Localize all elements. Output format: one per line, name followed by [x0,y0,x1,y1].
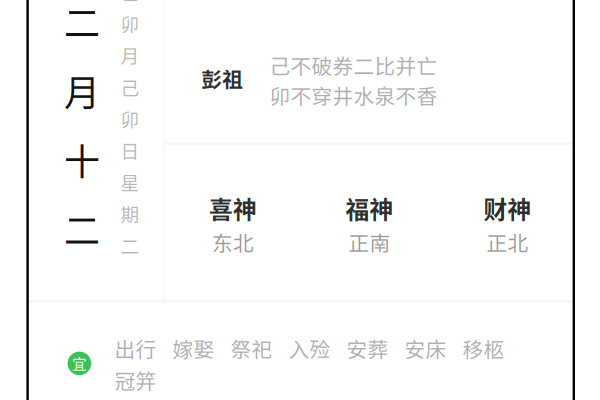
button[interactable]: 财神 [447,193,567,255]
staticText: 己 [120,73,139,100]
button[interactable]: 二 [49,0,115,263]
staticText: 日 [120,137,139,164]
staticText: 卯 [120,105,139,132]
staticText: 正南 [349,227,391,257]
staticText: 己 [120,0,139,5]
staticText: 月 [64,64,100,116]
staticText: 月 [120,41,139,68]
staticText: 冠笄 [114,365,156,395]
staticText: 二 [120,232,139,259]
staticText: 福神 [346,191,394,225]
button[interactable]: 喜神 [173,193,293,255]
staticText: 东北 [212,227,254,257]
staticText: 卯不穿井水泉不香 [269,80,437,110]
staticText: 十 [64,133,100,186]
staticText: 出行 嫁娶 祭祀 入殓 安葬 安床 移柩 [114,333,504,363]
staticText: 宜 [72,353,87,374]
staticText: 喜神 [209,191,257,225]
staticText: 期 [120,200,139,227]
button[interactable]: 出行 嫁娶 祭祀 入殓 安葬 安床 移柩 [114,336,506,392]
staticText: 正北 [486,227,528,257]
staticText: 财神 [483,191,531,225]
button[interactable]: 宜 — auspicious activities [68,352,91,375]
staticText: 卯 [120,10,139,37]
staticText: 二 [64,203,100,255]
button[interactable]: 福神 [310,193,430,255]
staticText: 彭祖 [201,63,243,93]
staticText: 二 [64,0,100,47]
staticText: 己不破券二比并亡 [269,50,437,80]
staticText: 星 [120,168,139,195]
